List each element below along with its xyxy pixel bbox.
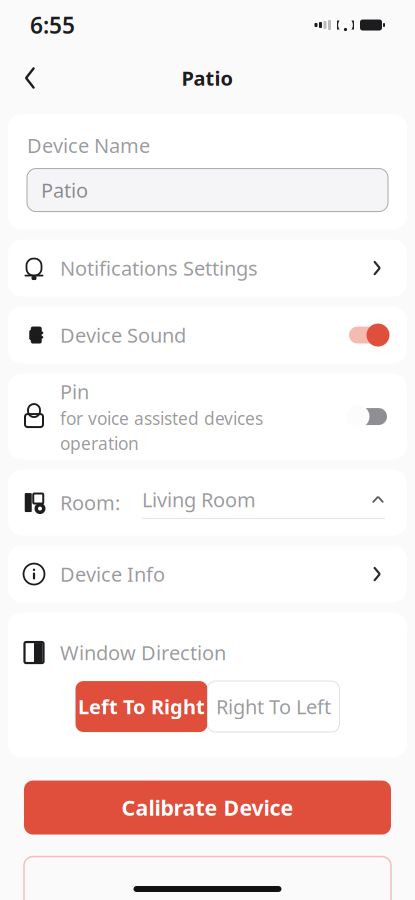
staticText: Patio bbox=[41, 177, 88, 203]
button[interactable]: Pin bbox=[0, 374, 415, 460]
button[interactable]: Device Sound bbox=[0, 307, 415, 364]
staticText: Living Room bbox=[142, 486, 256, 513]
staticText: Calibrate Device bbox=[121, 793, 293, 822]
button[interactable]: Device Info bbox=[0, 546, 415, 603]
staticText: Room: bbox=[60, 489, 120, 516]
staticText: Pin bbox=[60, 378, 89, 405]
staticText: 6:55 bbox=[30, 10, 75, 40]
button[interactable]: Notifications Settings bbox=[0, 240, 415, 297]
button[interactable]: Room: bbox=[0, 470, 415, 536]
staticText: Patio bbox=[181, 65, 233, 91]
button[interactable]: Calibrate Device bbox=[0, 781, 415, 835]
button[interactable]: Right To Left bbox=[207, 681, 339, 732]
staticText: Right To Left bbox=[216, 693, 331, 720]
staticText: Window Direction bbox=[60, 639, 226, 666]
staticText: Notifications Settings bbox=[60, 255, 258, 281]
button[interactable]: Back bbox=[8, 56, 52, 100]
staticText: Device Sound bbox=[60, 322, 186, 348]
staticText: for voice assisted devices bbox=[60, 407, 263, 430]
staticText: Device Name bbox=[27, 132, 150, 159]
button[interactable]: Remove Device bbox=[0, 857, 415, 900]
staticText: Device Info bbox=[60, 561, 165, 587]
staticText: operation bbox=[60, 432, 139, 455]
staticText: Left To Right bbox=[78, 693, 205, 720]
button[interactable]: Left To Right bbox=[75, 681, 207, 732]
